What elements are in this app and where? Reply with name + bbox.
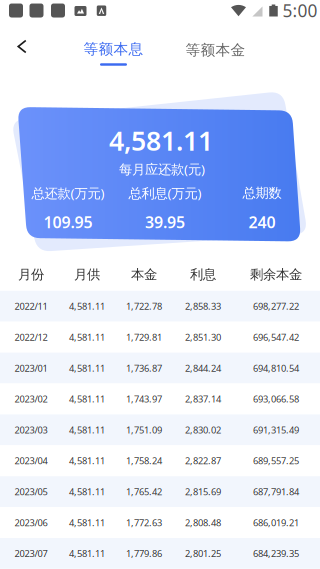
staticText: 2,851.30 bbox=[185, 331, 221, 343]
staticText: 4,581.11 bbox=[69, 331, 105, 343]
staticText: 2023/05 bbox=[14, 485, 47, 498]
staticText: 剩余本金 bbox=[250, 266, 302, 283]
staticText: 4,581.11 bbox=[69, 485, 105, 498]
staticText: 每月应还款(元) bbox=[119, 160, 205, 178]
staticText: 2023/04 bbox=[14, 455, 47, 467]
staticText: 1,751.09 bbox=[126, 424, 162, 436]
staticText: 2023/06 bbox=[14, 516, 47, 529]
staticText: 2,858.33 bbox=[185, 300, 221, 312]
staticText: 2023/02 bbox=[14, 393, 47, 405]
staticText: 39.95 bbox=[145, 211, 185, 233]
staticText: 686,019.21 bbox=[253, 516, 299, 529]
staticText: 总利息(万元) bbox=[128, 184, 201, 202]
staticText: 月供 bbox=[74, 266, 100, 283]
staticText: 2,815.69 bbox=[185, 485, 221, 498]
staticText: 2,801.25 bbox=[185, 547, 221, 560]
staticText: 240 bbox=[248, 211, 275, 233]
staticText: 总还款(万元) bbox=[31, 184, 104, 202]
staticText: 4,581.11 bbox=[69, 424, 105, 436]
staticText: 4,581.11 bbox=[69, 362, 105, 374]
staticText: 4,581.11 bbox=[69, 393, 105, 405]
staticText: 2023/03 bbox=[14, 424, 47, 436]
staticText: 694,810.54 bbox=[253, 362, 299, 374]
button[interactable]: 等额本息 bbox=[63, 28, 163, 72]
staticText: 2,808.48 bbox=[185, 516, 221, 529]
staticText: 109.95 bbox=[43, 211, 92, 233]
staticText: 2,822.87 bbox=[185, 455, 221, 467]
staticText: 693,066.58 bbox=[253, 393, 299, 405]
staticText: 总期数 bbox=[242, 185, 281, 201]
staticText: 2022/11 bbox=[14, 300, 47, 312]
staticText: 1,736.87 bbox=[126, 362, 162, 374]
button[interactable]: 等额本金 bbox=[165, 28, 265, 72]
staticText: 4,581.11 bbox=[109, 123, 213, 158]
staticText: 等额本息 bbox=[83, 40, 143, 58]
staticText: 4,581.11 bbox=[69, 300, 105, 312]
staticText: 等额本金 bbox=[185, 41, 245, 59]
staticText: 689,557.25 bbox=[253, 455, 299, 467]
staticText: 2023/01 bbox=[14, 362, 47, 374]
staticText: 4,581.11 bbox=[69, 516, 105, 529]
staticText: 月份 bbox=[18, 266, 44, 283]
staticText: 本金 bbox=[131, 266, 157, 283]
staticText: 利息 bbox=[190, 266, 216, 283]
staticText: 2023/07 bbox=[14, 547, 47, 560]
staticText: 1,722.78 bbox=[126, 300, 162, 312]
staticText: 2,844.24 bbox=[185, 362, 221, 374]
staticText: 1,729.81 bbox=[126, 331, 162, 343]
staticText: 1,772.63 bbox=[126, 516, 162, 529]
staticText: 1,765.42 bbox=[126, 485, 162, 498]
staticText: 1,743.97 bbox=[126, 393, 162, 405]
staticText: 1,779.86 bbox=[126, 547, 162, 560]
staticText: 5:00 bbox=[282, 0, 317, 22]
button[interactable]: Back bbox=[4, 25, 40, 67]
staticText: 1,758.24 bbox=[126, 455, 162, 467]
staticText: 4,581.11 bbox=[69, 455, 105, 467]
staticText: 2022/12 bbox=[14, 331, 47, 343]
staticText: 684,239.35 bbox=[253, 547, 299, 560]
staticText: 691,315.49 bbox=[253, 424, 299, 436]
staticText: 2,837.14 bbox=[185, 393, 221, 405]
staticText: 4,581.11 bbox=[69, 547, 105, 560]
staticText: 696,547.42 bbox=[253, 331, 299, 343]
staticText: 2,830.02 bbox=[185, 424, 221, 436]
staticText: 698,277.22 bbox=[253, 300, 299, 312]
staticText: 687,791.84 bbox=[253, 485, 299, 498]
